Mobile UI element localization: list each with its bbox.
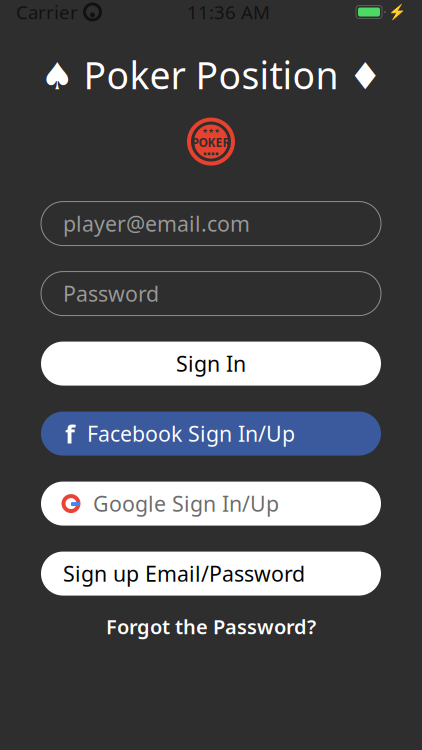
button[interactable]: Sign up Email/Password: [41, 552, 381, 596]
staticText: f: [65, 417, 75, 450]
button[interactable]: Sign In: [41, 342, 381, 386]
staticText: Sign In: [176, 349, 246, 378]
staticText: Facebook Sign In/Up: [87, 419, 295, 448]
staticText: player@email.com: [63, 209, 250, 238]
staticText: ▪▪▪▪: [203, 150, 219, 156]
staticText: Google Sign In/Up: [93, 489, 279, 518]
staticText: ★★★: [202, 127, 220, 134]
staticText: Password: [63, 279, 159, 308]
staticText: ⚡: [388, 4, 406, 20]
staticText: ♠ Poker Position ♦: [40, 50, 381, 100]
button[interactable]: f: [41, 412, 381, 456]
staticText: POKER: [191, 134, 230, 150]
button[interactable]: Google Sign In/Up: [41, 482, 381, 526]
staticText: Sign up Email/Password: [63, 559, 305, 588]
staticText: Forgot the Password?: [106, 613, 316, 640]
button[interactable]: Forgot the Password?: [41, 612, 381, 642]
staticText: 11:36 AM: [187, 0, 270, 24]
staticText: Carrier: [16, 0, 78, 24]
